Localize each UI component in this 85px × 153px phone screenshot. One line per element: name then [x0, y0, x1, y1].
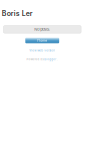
staticText: No posts. — [34, 27, 50, 32]
staticText: Blogger — [44, 58, 56, 61]
button[interactable]: Blogger — [44, 58, 56, 61]
staticText: Home — [37, 38, 47, 43]
button[interactable]: View web version — [0, 49, 84, 52]
staticText: Powered by — [27, 58, 44, 61]
staticText: View web version — [29, 49, 55, 52]
button[interactable]: Home — [25, 38, 59, 43]
staticText: Boris Ler — [2, 9, 33, 18]
